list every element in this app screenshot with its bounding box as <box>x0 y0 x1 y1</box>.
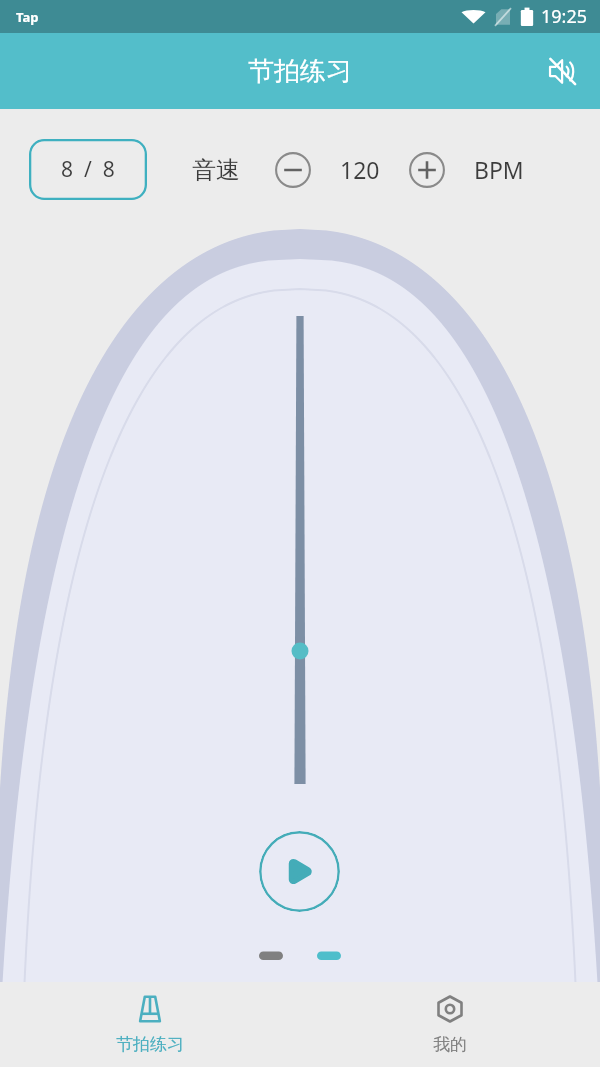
staticText: 节拍练习 <box>116 1034 184 1055</box>
staticText: 节拍练习 <box>248 55 352 88</box>
button[interactable]: 节拍练习 <box>0 982 300 1067</box>
staticText: BPM <box>474 154 524 185</box>
staticText: 19:25 <box>541 4 588 29</box>
button[interactable]: Decrease tempo <box>272 149 314 191</box>
staticText: 120 <box>340 154 380 185</box>
button[interactable]: 我的 <box>300 982 600 1067</box>
staticText: 我的 <box>433 1034 467 1055</box>
button[interactable]: Play <box>259 831 340 912</box>
staticText: Tap <box>16 8 39 26</box>
staticText: 音速 <box>192 155 240 185</box>
button[interactable]: 8 / 8 <box>29 139 147 200</box>
button[interactable]: Increase tempo <box>406 149 448 191</box>
button[interactable]: Mute <box>533 43 589 99</box>
staticText: 8 / 8 <box>61 155 115 184</box>
